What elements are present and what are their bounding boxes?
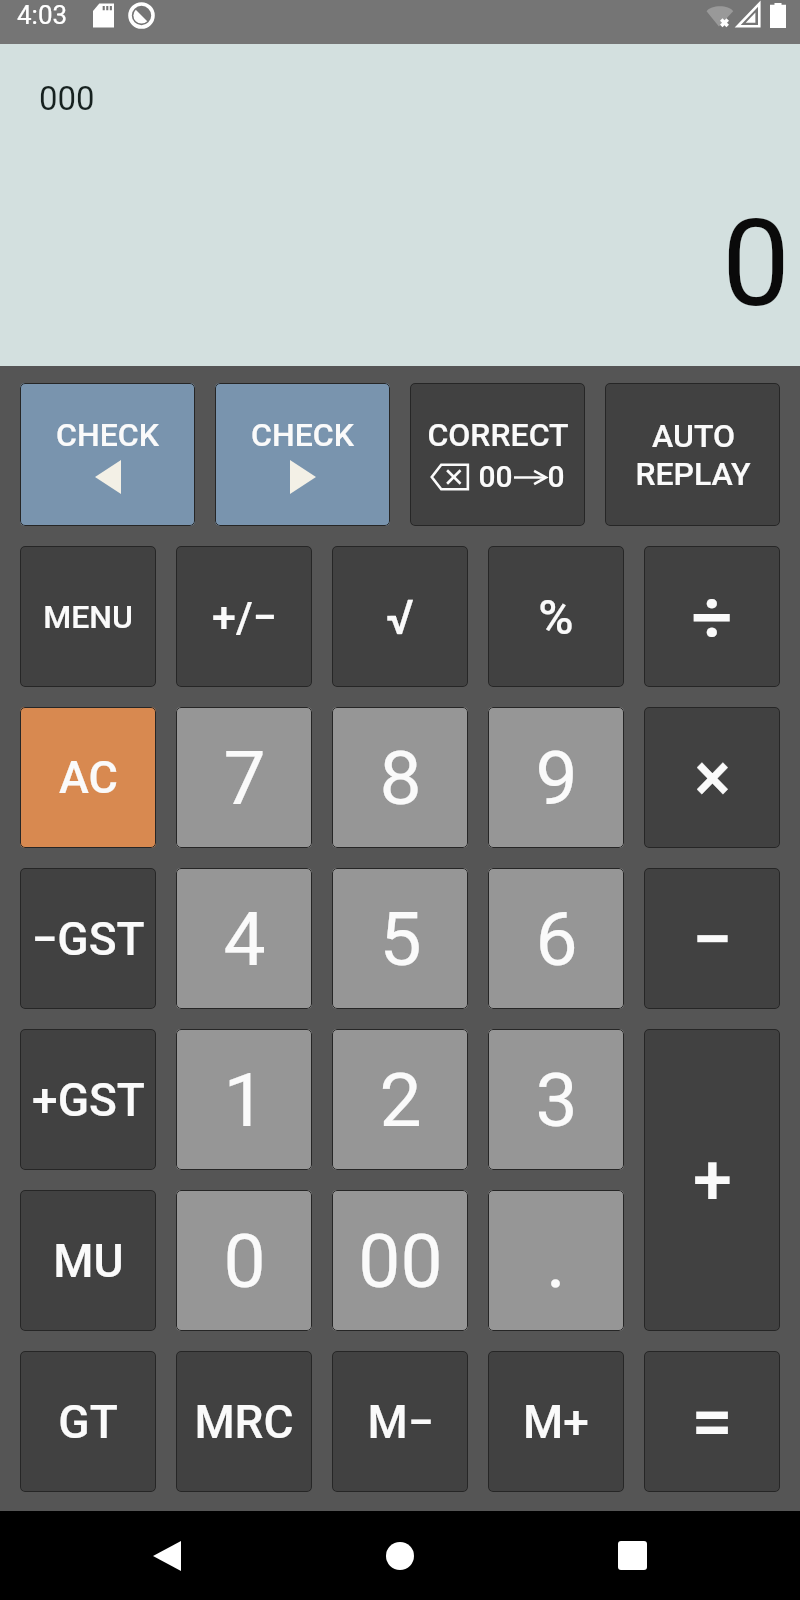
staticText: CORRECT [427, 416, 569, 454]
staticText: 0 [547, 459, 565, 494]
staticText: √ [386, 589, 414, 645]
button[interactable]: √ [332, 546, 468, 687]
staticText: − [692, 897, 733, 981]
staticText: 6 [535, 895, 578, 983]
staticText: % [538, 589, 574, 645]
button[interactable]: 6 [488, 868, 624, 1009]
button[interactable]: % [488, 546, 624, 687]
button[interactable]: × [644, 707, 780, 848]
staticText: 1 [223, 1056, 266, 1144]
staticText: 2 [379, 1056, 422, 1144]
button[interactable]: MU [20, 1190, 156, 1331]
button[interactable]: Back [107, 1511, 227, 1600]
button[interactable]: 3 [488, 1029, 624, 1170]
staticText: MRC [194, 1395, 294, 1449]
staticText: 8 [379, 734, 422, 822]
staticText: 4:03 [17, 0, 68, 30]
button[interactable]: CHECK [215, 383, 390, 526]
staticText: CHECK [56, 416, 159, 454]
staticText: 9 [535, 734, 578, 822]
staticText: 5 [379, 895, 422, 983]
button[interactable]: + [644, 1029, 780, 1331]
staticText: CHECK [251, 416, 354, 454]
button[interactable]: = [644, 1351, 780, 1492]
staticText: −GST [31, 912, 145, 966]
staticText: + [693, 1139, 732, 1221]
button[interactable]: MRC [176, 1351, 312, 1492]
staticText: M− [367, 1395, 434, 1449]
button[interactable]: M− [332, 1351, 468, 1492]
staticText: GT [58, 1395, 118, 1449]
button[interactable]: 7 [176, 707, 312, 848]
staticText: M+ [523, 1395, 589, 1449]
button[interactable]: Recents [572, 1511, 692, 1600]
staticText: 7 [223, 734, 266, 822]
staticText: 0 [223, 1217, 266, 1305]
button[interactable]: 9 [488, 707, 624, 848]
button[interactable]: 8 [332, 707, 468, 848]
button[interactable]: ÷ [644, 546, 780, 687]
button[interactable]: AUTO [605, 383, 780, 526]
button[interactable]: 2 [332, 1029, 468, 1170]
staticText: MU [53, 1234, 124, 1288]
staticText: × [694, 738, 731, 818]
button[interactable]: +GST [20, 1029, 156, 1170]
button[interactable]: 4 [176, 868, 312, 1009]
button[interactable]: 0 [176, 1190, 312, 1331]
staticText: 00 [358, 1217, 443, 1305]
button[interactable]: CHECK [20, 383, 195, 526]
button[interactable]: −GST [20, 868, 156, 1009]
staticText: AC [59, 751, 118, 804]
staticText: +GST [32, 1073, 145, 1127]
button[interactable]: − [644, 868, 780, 1009]
staticText: 4 [223, 895, 266, 983]
staticText: +/− [212, 592, 277, 642]
button[interactable]: Home [340, 1511, 460, 1600]
button[interactable]: . [488, 1190, 624, 1331]
button[interactable]: M+ [488, 1351, 624, 1492]
staticText: 00 [478, 459, 513, 494]
staticText: = [691, 1378, 733, 1465]
button[interactable]: MENU [20, 546, 156, 687]
staticText: AUTO [652, 417, 735, 455]
staticText: 0 [722, 193, 791, 335]
button[interactable]: AC [20, 707, 156, 848]
button[interactable]: 00 [332, 1190, 468, 1331]
button[interactable]: 5 [332, 868, 468, 1009]
staticText: 3 [535, 1056, 578, 1144]
button[interactable]: CORRECT [410, 383, 585, 526]
button[interactable]: GT [20, 1351, 156, 1492]
staticText: 000 [39, 79, 95, 118]
staticText: . [546, 1217, 566, 1305]
staticText: MENU [43, 598, 133, 636]
button[interactable]: +/− [176, 546, 312, 687]
staticText: REPLAY [635, 455, 751, 493]
button[interactable]: 1 [176, 1029, 312, 1170]
staticText: ÷ [691, 575, 733, 659]
